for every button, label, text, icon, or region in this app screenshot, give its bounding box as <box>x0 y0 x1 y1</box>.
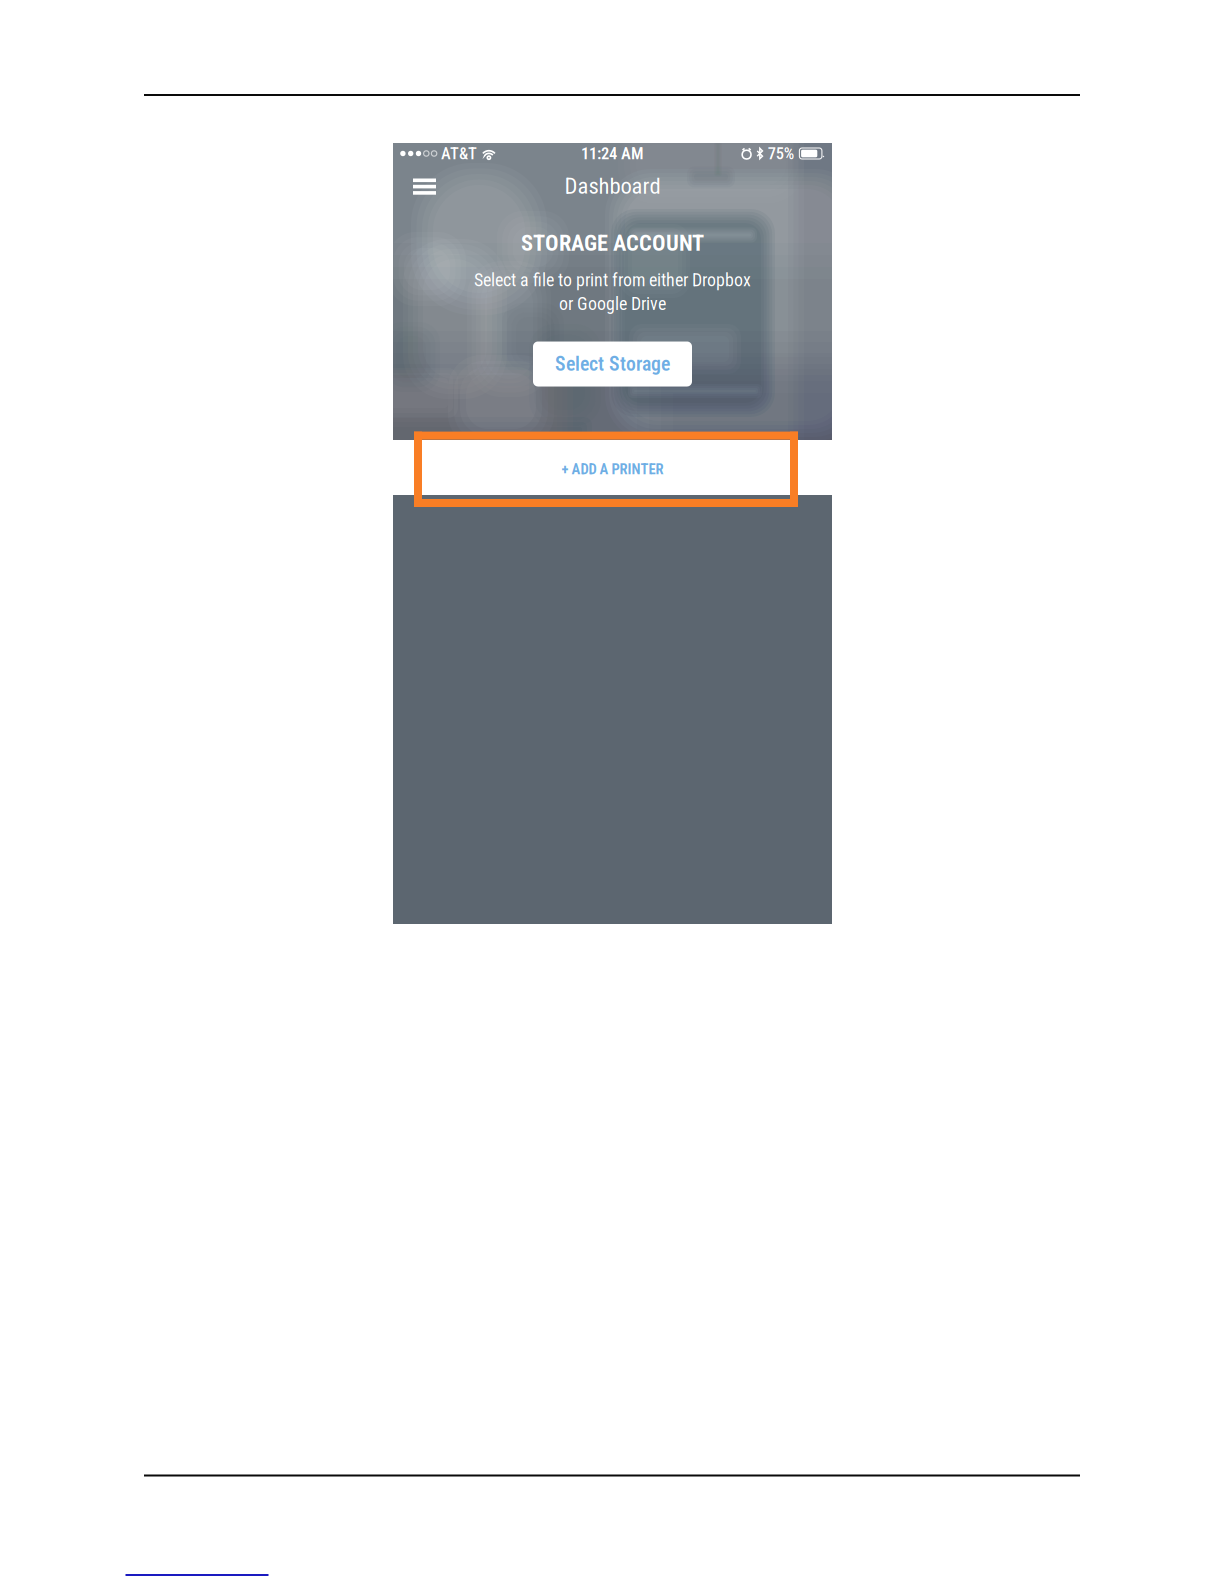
staticText: Select a file to print from either Dropb… <box>474 270 751 290</box>
staticText: + ADD A PRINTER <box>561 461 663 478</box>
staticText: 11:24 AM <box>581 144 644 163</box>
button[interactable]: Select Storage <box>533 341 692 386</box>
staticText: 75% <box>768 144 795 163</box>
button[interactable]: Menu <box>402 166 446 206</box>
staticText: Select Storage <box>555 352 670 375</box>
staticText: Dashboard <box>564 173 660 199</box>
button[interactable]: + ADD A PRINTER <box>393 440 832 495</box>
staticText: AT&T <box>441 144 477 163</box>
staticText: STORAGE ACCOUNT <box>521 230 704 256</box>
staticText: or Google Drive <box>559 293 666 314</box>
